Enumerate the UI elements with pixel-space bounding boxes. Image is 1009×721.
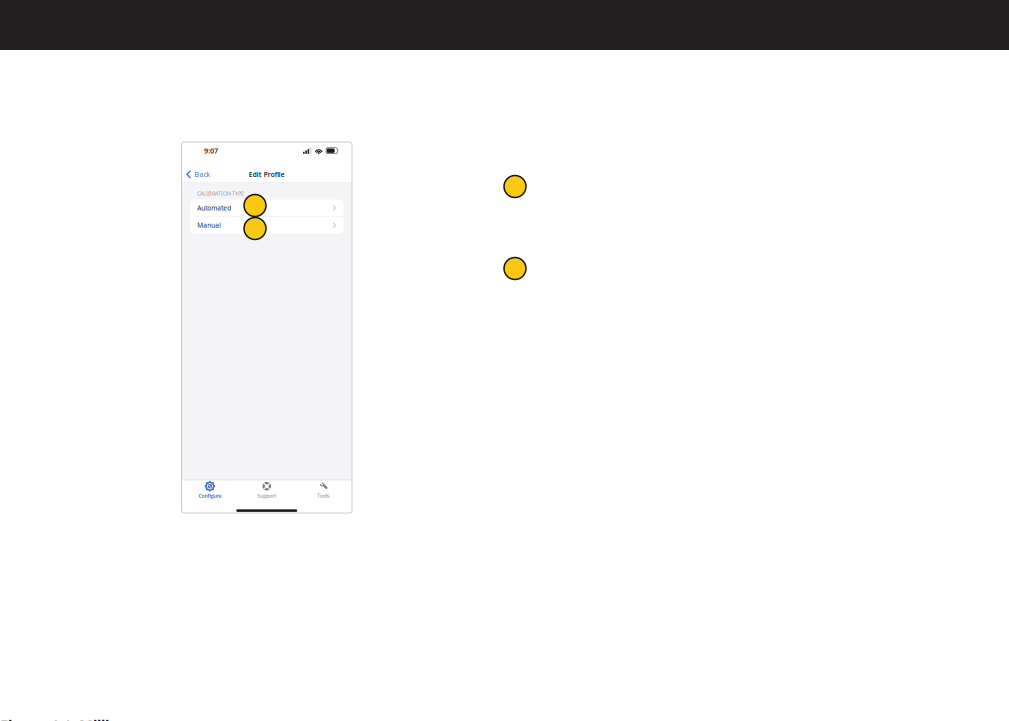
staticText: Edit Profile [249,170,285,179]
staticText: Figure 4-1 Milling [0,715,128,721]
button[interactable]: Configure [181,480,238,501]
button[interactable]: Tools [295,480,352,501]
staticText: Support [257,492,276,499]
staticText: Manual [197,221,221,230]
staticText: 9:07 [204,146,218,156]
staticText: Configure [198,492,221,499]
staticText: CALIBRATION TYPE [197,190,244,197]
staticText: Automated [197,203,231,212]
button[interactable]: Support [238,480,295,501]
button[interactable]: Automated [190,199,343,216]
staticText: Back [195,170,211,179]
button[interactable]: Manual [190,217,343,234]
staticText: Tools [317,492,330,499]
button[interactable]: Back [181,166,216,183]
